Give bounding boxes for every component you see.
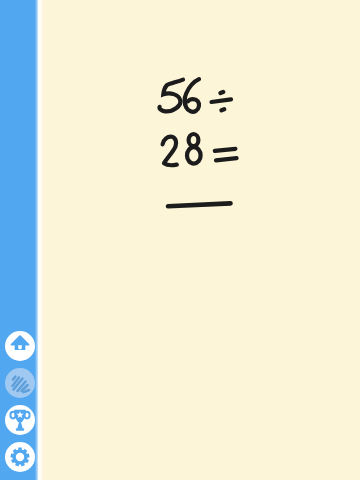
button[interactable] [5,368,35,398]
button[interactable] [5,405,35,435]
button[interactable] [5,442,35,472]
button[interactable] [5,331,35,361]
